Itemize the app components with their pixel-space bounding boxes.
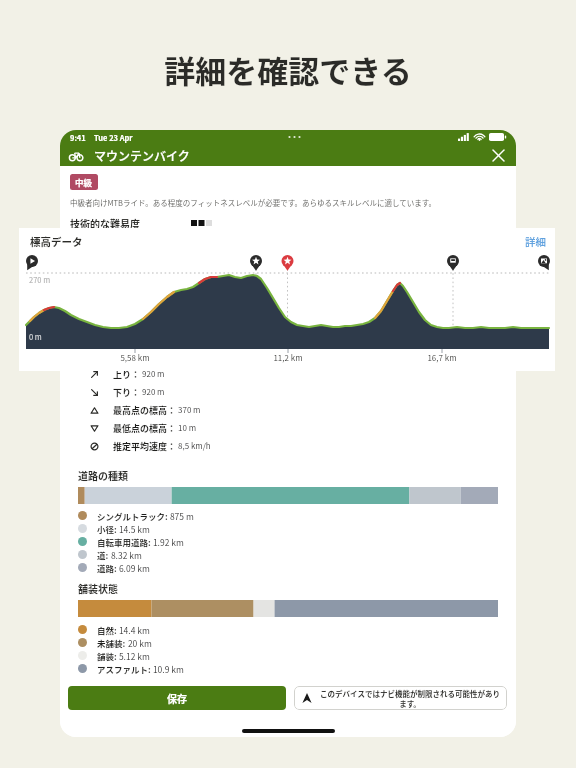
other: Mountain bike: [69, 148, 83, 162]
staticText: 920 m: [142, 368, 165, 380]
staticText: 20 km: [126, 637, 152, 649]
staticText: 920 m: [142, 386, 165, 398]
staticText: 0 m: [29, 331, 42, 342]
staticText: 自転車用道路:: [97, 536, 151, 548]
staticText: 最低点の標高：: [113, 422, 177, 435]
staticText: 10 m: [178, 422, 197, 434]
staticText: 下り：: [113, 386, 141, 399]
staticText: 16,7 km: [416, 352, 468, 364]
staticText: Tue 23 Apr: [94, 132, 133, 143]
staticText: 8,5 km/h: [178, 440, 211, 452]
staticText: アスファルト:: [97, 663, 151, 675]
staticText: 9:41: [70, 132, 86, 143]
staticText: 14.4 km: [117, 624, 150, 636]
staticText: 推定平均速度：: [113, 440, 177, 453]
staticText: このデバイスではナビ機能が制限される可能性があります。: [319, 688, 501, 709]
staticText: 道:: [97, 549, 109, 561]
staticText: 舗装状態: [78, 581, 118, 595]
staticText: 未舗装:: [97, 637, 126, 649]
staticText: 保存: [167, 691, 187, 705]
button[interactable]: このデバイスではナビ機能が制限される可能性があります。: [294, 686, 507, 710]
staticText: 詳細: [525, 234, 546, 249]
staticText: 自然:: [97, 624, 117, 636]
staticText: 標高データ: [30, 234, 83, 249]
staticText: 270 m: [29, 274, 51, 285]
staticText: 875 m: [168, 510, 194, 522]
staticText: 6.09 km: [117, 562, 150, 574]
staticText: 5.12 km: [117, 650, 150, 662]
staticText: シングルトラック:: [97, 510, 168, 522]
staticText: 中級者向けMTBライド。ある程度のフィットネスレベルが必要です。あらゆるスキルレ…: [70, 197, 436, 208]
staticText: 小径:: [97, 523, 117, 535]
staticText: 14.5 km: [117, 523, 150, 535]
staticText: 技術的な難易度: [70, 216, 140, 230]
staticText: 必要なフィットネスレベル: [70, 236, 190, 250]
staticText: 道路:: [97, 562, 117, 574]
staticText: 10.9 km: [151, 663, 184, 675]
staticText: 中級: [75, 176, 93, 188]
staticText: 370 m: [178, 404, 201, 416]
staticText: マウンテンバイク: [94, 147, 190, 164]
button[interactable]: 保存: [68, 686, 286, 710]
staticText: 11,2 km: [262, 352, 314, 364]
staticText: 上り：: [113, 368, 141, 381]
staticText: 舗装:: [97, 650, 117, 662]
staticText: 8.32 km: [109, 549, 142, 561]
staticText: 詳細を確認できる: [0, 47, 576, 92]
staticText: 最高点の標高：: [113, 404, 177, 417]
staticText: 道路の種類: [78, 468, 128, 482]
button[interactable]: 詳細: [525, 234, 546, 249]
staticText: 1.92 km: [151, 536, 184, 548]
button[interactable]: Close: [490, 147, 506, 163]
staticText: 5,58 km: [109, 352, 161, 364]
